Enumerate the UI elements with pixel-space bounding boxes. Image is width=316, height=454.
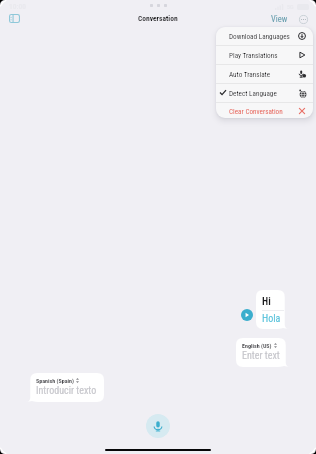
button[interactable]: Spanish (Spain): [25, 373, 104, 402]
staticText: Conversation: [138, 14, 178, 23]
staticText: Hola: [262, 313, 281, 325]
staticText: Spanish (Spain): [36, 377, 74, 384]
staticText: Detect Language: [229, 89, 277, 97]
button[interactable]: More options: [296, 12, 310, 26]
staticText: Clear Conversation: [229, 107, 283, 115]
button[interactable]: Play Translations: [216, 46, 313, 64]
button[interactable]: Hi: [256, 290, 290, 329]
staticText: Download Languages: [229, 32, 290, 40]
staticText: Introducir texto: [36, 385, 97, 397]
button[interactable]: View: [268, 11, 291, 27]
staticText: Hi: [262, 296, 271, 308]
button[interactable]: Microphone: [146, 414, 170, 438]
button[interactable]: Sidebar: [3, 10, 25, 27]
button[interactable]: English (US): [236, 338, 291, 367]
staticText: Enter text: [242, 350, 280, 362]
button[interactable]: Detect Language: [216, 84, 313, 102]
staticText: English (US): [242, 342, 272, 349]
staticText: Auto Translate: [229, 70, 271, 78]
button[interactable]: Clear Conversation: [216, 103, 313, 118]
button[interactable]: Play: [241, 309, 253, 321]
button[interactable]: Download Languages: [216, 27, 313, 45]
staticText: Play Translations: [229, 51, 278, 59]
staticText: View: [271, 14, 288, 24]
button[interactable]: Auto Translate: [216, 65, 313, 83]
